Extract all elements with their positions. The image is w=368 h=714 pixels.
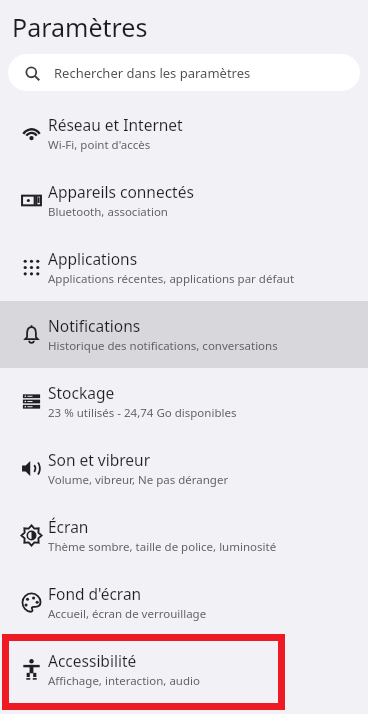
button[interactable]: Applications [0, 234, 368, 301]
button[interactable]: Notifications [0, 301, 368, 368]
staticText: Appareils connectés [48, 181, 194, 202]
staticText: Rechercher dans les paramètres [54, 64, 251, 82]
staticText: Historique des notifications, conversati… [48, 338, 278, 354]
button[interactable]: Accessibilité [0, 636, 368, 703]
staticText: Stockage [48, 382, 115, 403]
staticText: Réseau et Internet [48, 114, 183, 135]
staticText: Accessibilité [48, 650, 137, 671]
staticText: Écran [48, 516, 89, 537]
button[interactable]: Réseau et Internet [0, 100, 368, 167]
button[interactable]: Stockage [0, 368, 368, 435]
button[interactable]: Appareils connectés [0, 167, 368, 234]
staticText: Thème sombre, taille de police, luminosi… [48, 539, 277, 555]
button[interactable]: Fond d'écran [0, 569, 368, 636]
staticText: Bluetooth, association [48, 204, 168, 220]
staticText: Notifications [48, 315, 141, 336]
button[interactable]: Écran [0, 502, 368, 569]
staticText: Applications récentes, applications par … [48, 271, 295, 287]
staticText: Applications [48, 248, 138, 269]
staticText: Affichage, interaction, audio [48, 673, 200, 689]
staticText: 23 % utilisés - 24,74 Go disponibles [48, 405, 237, 421]
staticText: Wi-Fi, point d'accès [48, 137, 151, 153]
staticText: Paramètres [12, 10, 148, 44]
button[interactable]: Son et vibreur [0, 435, 368, 502]
staticText: Accueil, écran de verrouillage [48, 606, 207, 622]
staticText: Volume, vibreur, Ne pas déranger [48, 472, 229, 488]
staticText: Fond d'écran [48, 583, 142, 604]
button[interactable]: Rechercher dans les paramètres [8, 54, 360, 91]
staticText: Son et vibreur [48, 449, 151, 470]
